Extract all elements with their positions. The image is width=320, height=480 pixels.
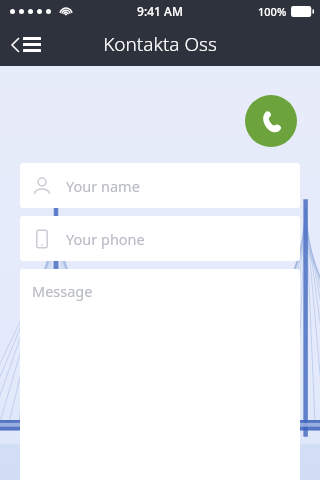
staticText: 9:41 AM (137, 3, 183, 19)
button[interactable]: Call (245, 95, 297, 147)
staticText: Your name (66, 176, 140, 196)
button[interactable]: Message (20, 269, 300, 480)
staticText: Message (32, 281, 93, 301)
staticText: 100% (258, 4, 287, 19)
staticText: Your phone (66, 229, 145, 249)
button[interactable]: Your phone (20, 216, 300, 261)
staticText: Kontakta Oss (103, 31, 217, 57)
button[interactable]: Your name (20, 163, 300, 208)
button[interactable]: Menu (8, 31, 45, 58)
